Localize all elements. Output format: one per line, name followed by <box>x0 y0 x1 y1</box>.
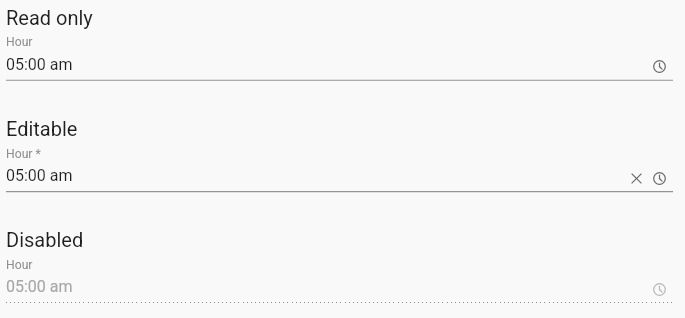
button[interactable]: Choose time <box>653 172 666 185</box>
staticText: Disabled <box>6 228 84 251</box>
button[interactable]: 05:00 am <box>6 48 626 78</box>
staticText: 05:00 am <box>6 166 73 185</box>
other: Choose time <box>653 283 666 296</box>
staticText: Hour <box>6 35 33 49</box>
staticText: Hour * <box>6 147 41 161</box>
staticText: 05:00 am <box>6 55 73 74</box>
button[interactable]: Choose time <box>653 60 666 73</box>
staticText: 05:00 am <box>6 277 73 296</box>
button[interactable]: 05:00 am <box>6 159 626 189</box>
staticText: Hour <box>6 258 33 272</box>
staticText: Read only <box>6 6 93 29</box>
staticText: Editable <box>6 117 78 140</box>
button[interactable]: Clear <box>632 174 641 183</box>
